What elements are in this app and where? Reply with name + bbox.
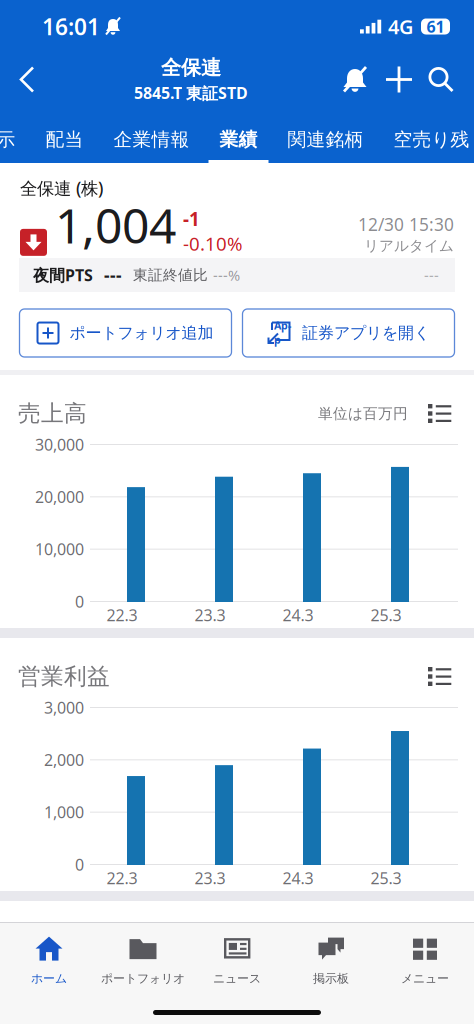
button[interactable]: 掲示板	[284, 923, 378, 988]
staticText: 売上高	[18, 400, 87, 427]
staticText: リアルタイム	[364, 237, 454, 255]
button[interactable]: Add	[378, 54, 420, 104]
staticText: 4G	[388, 13, 414, 40]
staticText: -1	[183, 206, 200, 231]
staticText: 示	[0, 128, 15, 151]
staticText: 23.3	[194, 867, 225, 889]
staticText: 22.3	[106, 867, 137, 889]
staticText: 24.3	[282, 867, 313, 889]
staticText: ---	[424, 265, 439, 285]
staticText: 3,000	[44, 697, 84, 718]
staticText: メニュー	[401, 971, 449, 986]
button[interactable]: App	[242, 309, 454, 357]
staticText: 企業情報	[113, 128, 189, 151]
staticText: 全保連	[161, 56, 221, 80]
button[interactable]: 空売り残	[378, 106, 474, 163]
staticText: ---	[104, 263, 122, 286]
staticText: 20,000	[35, 486, 84, 507]
staticText: 12/30 15:30	[358, 213, 454, 236]
button[interactable]: ホーム	[2, 923, 96, 988]
staticText: 営業利益	[18, 663, 110, 690]
button[interactable]: Search	[420, 54, 462, 104]
staticText: 23.3	[194, 604, 225, 626]
staticText: 業績	[219, 128, 257, 151]
staticText: 10,000	[35, 538, 84, 560]
staticText: 1,000	[44, 801, 84, 823]
button[interactable]: 示	[0, 106, 30, 163]
staticText: 22.3	[106, 604, 137, 626]
staticText: 30,000	[35, 434, 84, 455]
staticText: 全保連 (株)	[20, 176, 103, 199]
staticText: 東証終値比	[133, 266, 208, 284]
staticText: 単位は百万円	[318, 404, 408, 422]
staticText: 配当	[45, 128, 83, 151]
staticText: ポートフォリオ	[101, 971, 185, 986]
staticText: 掲示板	[313, 971, 349, 986]
staticText: 夜間PTS	[33, 264, 93, 286]
staticText: 0	[75, 854, 84, 875]
button[interactable]: ポートフォリオ	[96, 923, 190, 988]
staticText: ---%	[213, 265, 240, 285]
staticText: 16:01	[42, 11, 100, 41]
staticText: 証券アプリを開く	[302, 323, 430, 343]
button[interactable]: メニュー	[378, 923, 472, 988]
staticText: 1,004	[55, 193, 176, 257]
staticText: 5845.T 東証STD	[134, 82, 248, 103]
button[interactable]: 関連銘柄	[272, 106, 378, 163]
button[interactable]: ニュース	[190, 923, 284, 988]
staticText: 25.3	[370, 867, 401, 889]
staticText: ポートフォリオ追加	[69, 323, 213, 343]
staticText: 25.3	[370, 604, 401, 626]
button[interactable]: Show as table	[424, 397, 456, 429]
button[interactable]: 業績	[204, 106, 272, 163]
button[interactable]: Back	[4, 54, 50, 104]
staticText: -0.10%	[183, 231, 243, 256]
staticText: 2,000	[44, 749, 84, 770]
staticText: ホーム	[31, 971, 67, 986]
button[interactable]: 配当	[30, 106, 98, 163]
staticText: ニュース	[213, 971, 261, 986]
button[interactable]: 企業情報	[98, 106, 204, 163]
button[interactable]: Notifications off	[332, 54, 378, 104]
staticText: 24.3	[282, 604, 313, 626]
staticText: App	[274, 318, 291, 347]
button[interactable]: Show as table	[424, 660, 456, 692]
staticText: 空売り残	[393, 128, 469, 151]
staticText: 61	[426, 16, 444, 37]
staticText: 関連銘柄	[287, 128, 363, 151]
button[interactable]: ポートフォリオ追加	[19, 309, 231, 357]
staticText: 0	[75, 591, 84, 612]
